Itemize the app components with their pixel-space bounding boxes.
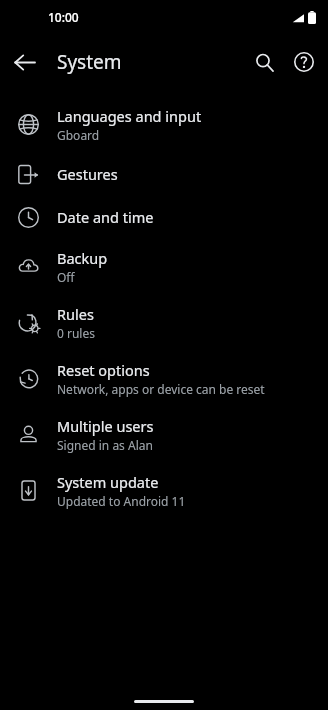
button[interactable]: System update — [0, 462, 328, 518]
button[interactable]: Multiple users — [0, 406, 328, 462]
staticText: Gestures — [57, 164, 118, 184]
staticText: Gboard — [57, 127, 100, 143]
button[interactable]: Help — [284, 42, 324, 82]
staticText: Signed in as Alan — [57, 437, 153, 453]
button[interactable]: Search — [244, 42, 284, 82]
staticText: Reset options — [57, 360, 150, 380]
button[interactable]: Gestures — [0, 152, 328, 195]
button[interactable]: Reset options — [0, 350, 328, 406]
staticText: Backup — [57, 248, 108, 268]
button[interactable]: Languages and input — [0, 96, 328, 152]
staticText: System update — [57, 472, 159, 492]
staticText: Languages and input — [57, 106, 202, 126]
button[interactable]: Date and time — [0, 195, 328, 238]
staticText: Updated to Android 11 — [57, 493, 186, 509]
button[interactable]: Back — [4, 42, 44, 82]
button[interactable]: Rules — [0, 294, 328, 350]
staticText: Rules — [57, 304, 94, 324]
staticText: Date and time — [57, 207, 154, 227]
staticText: Multiple users — [57, 416, 154, 436]
button[interactable]: Backup — [0, 238, 328, 294]
staticText: Network, apps or device can be reset — [57, 381, 265, 397]
staticText: Off — [57, 269, 75, 285]
staticText: 10:00 — [48, 9, 79, 25]
staticText: System — [57, 49, 122, 75]
staticText: 0 rules — [57, 325, 95, 341]
